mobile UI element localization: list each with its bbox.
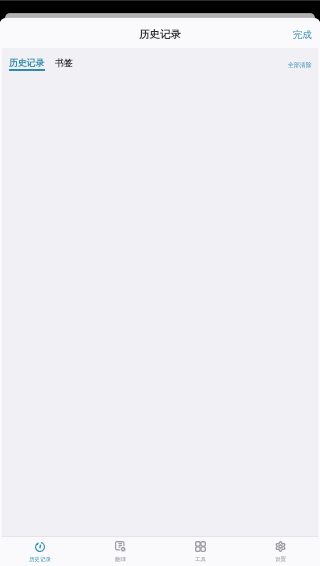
other: Settings: [275, 541, 286, 552]
button[interactable]: 书签: [55, 48, 73, 69]
button[interactable]: Tools: [160, 537, 240, 566]
staticText: 工具: [195, 556, 206, 563]
staticText: 历史记录: [29, 556, 51, 563]
staticText: 完成: [293, 29, 312, 41]
button[interactable]: Settings: [240, 537, 320, 566]
staticText: 全部清除: [288, 61, 312, 68]
staticText: 翻译: [115, 556, 126, 563]
button[interactable]: 完成: [285, 22, 320, 45]
other: Tools: [195, 541, 206, 552]
other: Translate: [115, 541, 126, 552]
button[interactable]: Translate: [80, 537, 160, 566]
button[interactable]: 全部清除: [280, 48, 320, 72]
staticText: 历史记录: [139, 28, 181, 41]
staticText: 历史记录: [9, 58, 45, 69]
staticText: 设置: [275, 556, 286, 563]
other: History: [35, 542, 45, 552]
staticText: 书签: [55, 58, 73, 69]
button[interactable]: 历史记录: [9, 48, 45, 71]
button[interactable]: History: [0, 537, 80, 566]
